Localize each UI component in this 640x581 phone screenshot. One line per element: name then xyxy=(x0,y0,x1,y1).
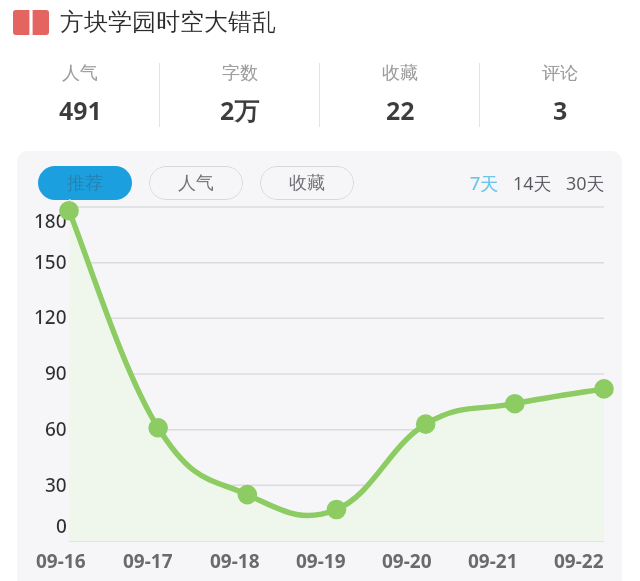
staticText: 180 xyxy=(34,208,67,234)
staticText: 22 xyxy=(386,93,415,127)
staticText: 09-18 xyxy=(210,548,260,574)
button[interactable]: 收藏 xyxy=(260,166,354,200)
button[interactable]: 30天 xyxy=(566,171,605,196)
staticText: 方块学园时空大错乱 xyxy=(60,7,276,37)
staticText: 30 xyxy=(45,472,67,498)
button[interactable]: 14天 xyxy=(513,171,552,196)
staticText: 14天 xyxy=(513,171,552,196)
staticText: 09-22 xyxy=(554,548,604,574)
staticText: 收藏 xyxy=(382,62,418,85)
staticText: 09-16 xyxy=(36,548,86,574)
staticText: 120 xyxy=(34,304,67,330)
staticText: 09-19 xyxy=(296,548,346,574)
staticText: 0 xyxy=(56,513,67,539)
staticText: 491 xyxy=(59,93,102,127)
staticText: 09-21 xyxy=(468,548,518,574)
staticText: 字数 xyxy=(222,62,258,85)
staticText: 2万 xyxy=(220,93,260,127)
staticText: 人气 xyxy=(178,172,214,195)
staticText: 评论 xyxy=(542,62,578,85)
other: Book xyxy=(13,10,49,35)
button[interactable]: 收藏 xyxy=(320,44,480,145)
staticText: 3 xyxy=(553,93,568,127)
staticText: 09-17 xyxy=(123,548,173,574)
staticText: 60 xyxy=(45,416,67,442)
staticText: 90 xyxy=(45,360,67,386)
staticText: 30天 xyxy=(566,171,605,196)
button[interactable]: Book xyxy=(0,0,640,44)
button[interactable]: 推荐 xyxy=(38,166,132,200)
button[interactable]: 字数 xyxy=(160,44,320,145)
button[interactable]: 人气 xyxy=(0,44,160,145)
button[interactable]: 7天 xyxy=(470,171,499,196)
staticText: 推荐 xyxy=(67,172,103,195)
staticText: 150 xyxy=(34,249,67,275)
staticText: 7天 xyxy=(470,171,499,196)
staticText: 收藏 xyxy=(289,172,325,195)
button[interactable]: 人气 xyxy=(149,166,243,200)
staticText: 09-20 xyxy=(382,548,432,574)
staticText: 人气 xyxy=(62,62,98,85)
button[interactable]: 评论 xyxy=(480,44,640,145)
